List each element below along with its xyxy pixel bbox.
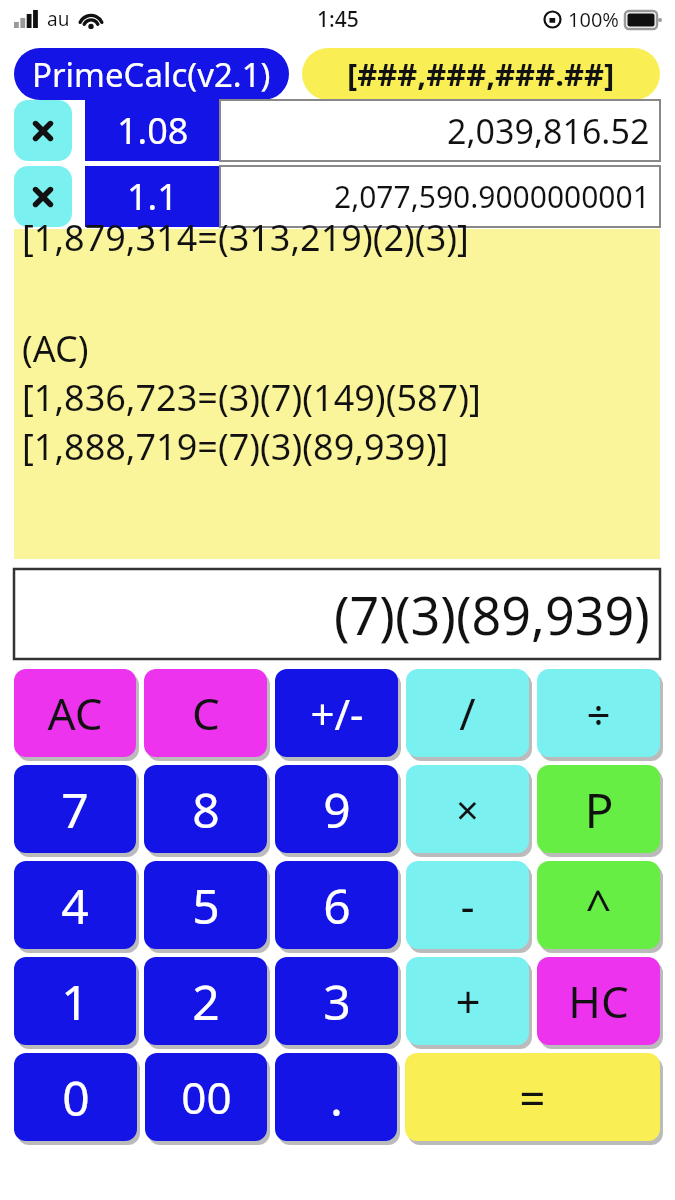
staticText: 1 <box>61 969 89 1034</box>
button[interactable]: P <box>537 765 660 853</box>
button[interactable]: = <box>405 1053 660 1141</box>
staticText: [1,888,719=(7)(3)(89,939)] <box>22 422 449 471</box>
staticText: PrimeCalc(v2.1) <box>32 52 271 97</box>
staticText: ^ <box>585 874 612 937</box>
button[interactable]: +/- <box>275 669 398 757</box>
button[interactable]: 9 <box>275 765 398 853</box>
staticText: 1.1 <box>127 172 178 221</box>
button[interactable]: 2,077,590.9000000001 <box>220 166 660 227</box>
button[interactable]: HC <box>537 957 660 1045</box>
staticText: [1,879,314=(313,219)(2)(3)] <box>22 213 469 262</box>
staticText: au <box>47 6 70 32</box>
button[interactable]: / <box>406 669 529 757</box>
staticText: . <box>330 1065 343 1130</box>
staticText: 00 <box>181 1067 232 1127</box>
button[interactable]: Multiply by 1.08 <box>14 100 72 161</box>
button[interactable]: 00 <box>145 1053 267 1141</box>
staticText: +/- <box>310 685 364 742</box>
button[interactable]: AC <box>14 669 136 757</box>
button[interactable]: 8 <box>144 765 267 853</box>
button[interactable]: ÷ <box>537 669 660 757</box>
staticText: + <box>455 971 481 1031</box>
button[interactable]: PrimeCalc(v2.1) <box>14 48 289 100</box>
staticText: 1.08 <box>117 106 189 155</box>
button[interactable]: 1.08 <box>85 100 220 161</box>
staticText: 2,077,590.9000000001 <box>334 176 650 217</box>
staticText: [###,###,###.##] <box>347 53 615 95</box>
button[interactable]: 6 <box>275 861 398 949</box>
button[interactable]: . <box>275 1053 397 1141</box>
button[interactable]: (7)(3)(89,939) <box>14 569 660 659</box>
staticText: 2,039,816.52 <box>447 108 650 154</box>
staticText: 100% <box>568 6 619 33</box>
button[interactable]: + <box>406 957 529 1045</box>
button[interactable]: ^ <box>537 861 660 949</box>
staticText: 4 <box>61 873 89 938</box>
staticText: ÷ <box>586 685 611 742</box>
button[interactable]: C <box>144 669 267 757</box>
staticText: 2 <box>192 969 220 1034</box>
button[interactable]: - <box>406 861 529 949</box>
button[interactable]: 7 <box>14 765 136 853</box>
staticText: = <box>519 1066 546 1129</box>
button[interactable]: [1,879,314=(313,219)(2)(3)] <box>14 229 660 559</box>
staticText: 7 <box>61 777 89 842</box>
staticText: (7)(3)(89,939) <box>334 579 650 650</box>
button[interactable]: 5 <box>144 861 267 949</box>
staticText: 1:45 <box>317 5 359 34</box>
staticText: (AC) <box>22 324 89 373</box>
button[interactable]: Multiply by 1.1 <box>14 166 72 227</box>
staticText: 0 <box>62 1065 90 1130</box>
staticText: 3 <box>323 969 351 1034</box>
staticText: HC <box>568 971 629 1031</box>
staticText: 9 <box>323 777 351 842</box>
staticText: 6 <box>323 873 351 938</box>
button[interactable]: 2 <box>144 957 267 1045</box>
button[interactable]: × <box>406 765 529 853</box>
staticText: / <box>459 683 476 743</box>
staticText: AC <box>47 683 103 743</box>
staticText: 8 <box>192 777 220 842</box>
staticText: [1,836,723=(3)(7)(149)(587)] <box>22 373 481 422</box>
button[interactable]: 0 <box>14 1053 137 1141</box>
staticText: P <box>584 777 614 842</box>
button[interactable]: 2,039,816.52 <box>220 100 660 161</box>
button[interactable]: 1 <box>14 957 136 1045</box>
staticText: C <box>192 683 220 743</box>
staticText: × <box>456 782 479 836</box>
staticText: - <box>460 875 475 935</box>
button[interactable]: 3 <box>275 957 398 1045</box>
button[interactable]: [###,###,###.##] <box>302 48 660 100</box>
button[interactable]: 4 <box>14 861 136 949</box>
staticText: 5 <box>192 873 220 938</box>
button[interactable]: 1.1 <box>85 166 220 227</box>
